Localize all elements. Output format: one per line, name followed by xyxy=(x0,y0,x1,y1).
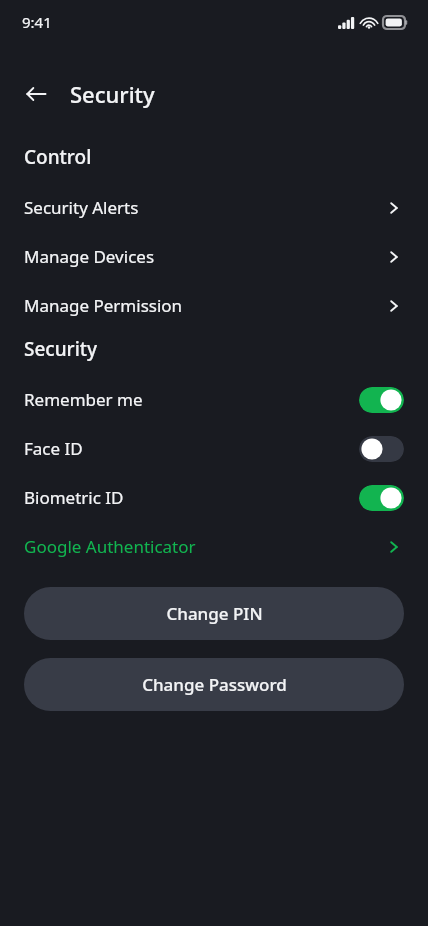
staticText: Security Alerts xyxy=(24,196,384,219)
button[interactable]: Biometric ID xyxy=(0,473,428,522)
staticText: Security xyxy=(24,336,98,362)
button[interactable]: Google Authenticator xyxy=(0,522,428,571)
button[interactable]: On xyxy=(359,485,404,511)
staticText: Remember me xyxy=(24,388,359,411)
staticText: Security xyxy=(70,79,155,109)
button[interactable]: Face ID xyxy=(0,424,428,473)
button[interactable]: Back xyxy=(14,72,58,116)
staticText: Manage Permission xyxy=(24,294,384,317)
button[interactable]: Change Password xyxy=(24,658,404,711)
staticText: Change Password xyxy=(142,673,287,696)
button[interactable]: Security Alerts xyxy=(0,183,428,232)
button[interactable]: Off xyxy=(359,436,404,462)
button[interactable]: Manage Devices xyxy=(0,232,428,281)
staticText: Biometric ID xyxy=(24,486,359,509)
staticText: Manage Devices xyxy=(24,245,384,268)
button[interactable]: Change PIN xyxy=(24,587,404,640)
button[interactable]: Manage Permission xyxy=(0,281,428,330)
button[interactable]: Remember me xyxy=(0,375,428,424)
button[interactable]: On xyxy=(359,387,404,413)
staticText: 9:41 xyxy=(22,12,52,32)
staticText: Google Authenticator xyxy=(24,535,384,558)
staticText: Face ID xyxy=(24,437,359,460)
staticText: Change PIN xyxy=(166,602,263,625)
staticText: Control xyxy=(24,144,92,170)
